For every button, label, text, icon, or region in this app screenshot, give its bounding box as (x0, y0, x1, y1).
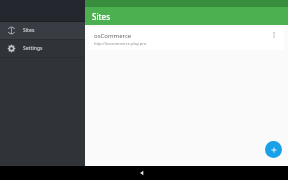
button[interactable]: Back (135, 166, 149, 180)
staticText: Sites (92, 11, 111, 22)
staticText: http://oscommerce.play.pro (94, 41, 147, 46)
staticText: Settings (23, 45, 43, 52)
button[interactable]: Settings (0, 40, 85, 57)
button[interactable]: Add site (265, 141, 282, 158)
button[interactable]: More options (268, 29, 280, 41)
staticText: Sites (23, 27, 35, 34)
staticText: osCommerce (94, 32, 132, 40)
button[interactable]: osCommerce (89, 27, 284, 50)
button[interactable]: Sites (0, 22, 85, 39)
